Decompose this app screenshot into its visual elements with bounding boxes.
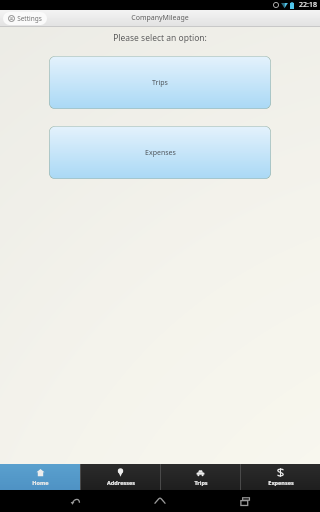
staticText: CompanyMileage <box>131 13 189 23</box>
button[interactable]: Home <box>150 491 170 511</box>
button[interactable]: Expenses <box>241 464 320 490</box>
button[interactable]: Trips <box>161 464 240 490</box>
button[interactable]: Back <box>65 491 85 511</box>
staticText: Trips <box>194 479 208 486</box>
button[interactable]: Recent apps <box>235 491 255 511</box>
button[interactable]: Expenses <box>49 126 271 179</box>
button[interactable]: Settings <box>3 12 47 25</box>
staticText: Expenses <box>145 148 176 158</box>
button[interactable]: Trips <box>49 56 271 109</box>
staticText: 22:18 <box>299 0 317 10</box>
staticText: Settings <box>17 14 42 23</box>
staticText: Trips <box>152 78 168 88</box>
staticText: Expenses <box>268 479 294 486</box>
staticText: Home <box>32 479 49 486</box>
staticText: Please select an option: <box>113 32 207 44</box>
button[interactable]: Addresses <box>81 464 160 490</box>
staticText: Addresses <box>107 479 135 486</box>
button[interactable]: Home <box>0 464 80 490</box>
